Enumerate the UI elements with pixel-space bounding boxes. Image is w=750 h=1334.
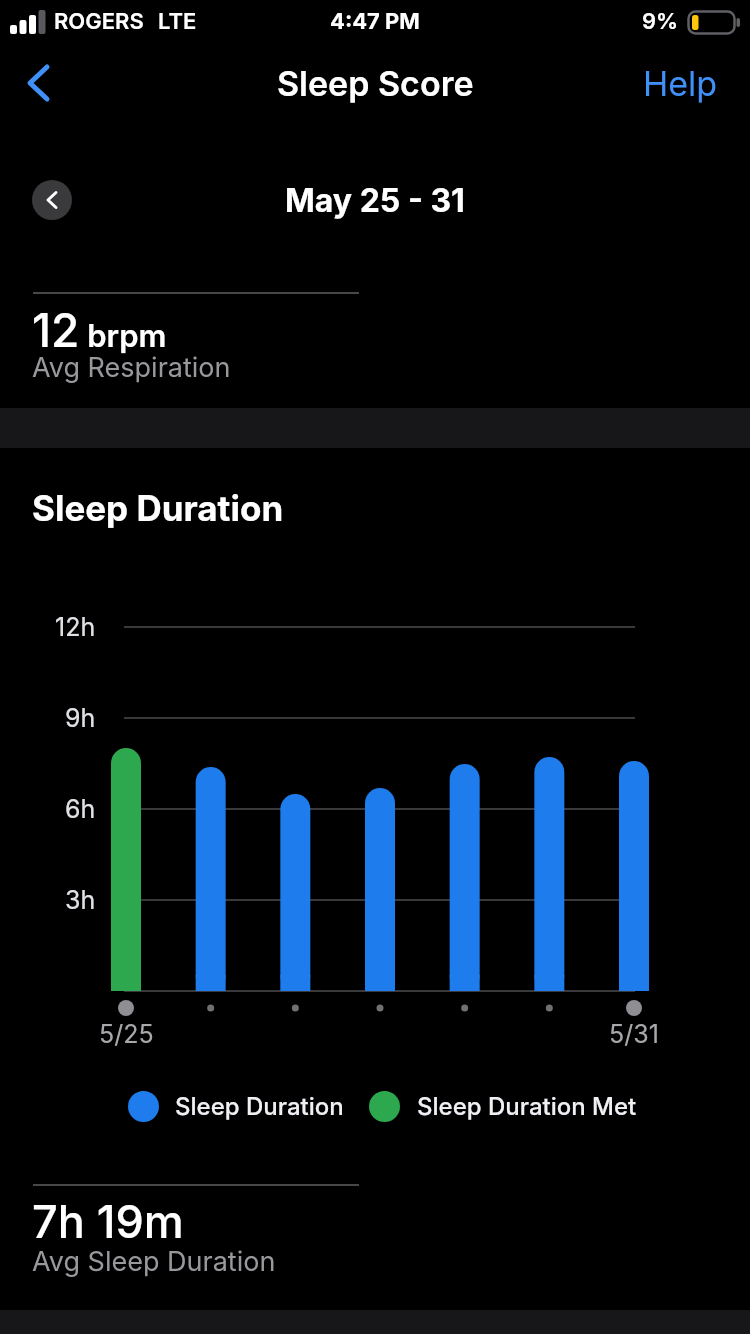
staticText: Help (643, 63, 718, 104)
staticText: Avg Sleep Duration (32, 1245, 276, 1278)
staticText: 7h 19m (32, 1194, 184, 1248)
button[interactable]: Sleep Duration (175, 1091, 344, 1122)
button[interactable]: Sleep Duration Met (417, 1091, 637, 1122)
staticText: 3h (65, 885, 96, 915)
button[interactable] (32, 180, 72, 220)
staticText: 12 brpm (32, 302, 167, 358)
staticText: Sleep Duration Met (417, 1092, 637, 1121)
button[interactable] (369, 1091, 400, 1122)
button[interactable] (128, 1091, 159, 1122)
staticText: 5/31 (609, 1019, 659, 1049)
staticText: Sleep Duration (175, 1092, 344, 1121)
button[interactable] (16, 53, 60, 113)
staticText: 9h (65, 703, 96, 733)
staticText: Sleep Score (277, 63, 474, 104)
staticText: ROGERS (54, 8, 144, 35)
staticText: May 25 - 31 (285, 181, 465, 220)
staticText: 5/25 (99, 1019, 154, 1049)
staticText: 12h (55, 612, 96, 642)
staticText: Sleep Duration (32, 487, 284, 529)
staticText: 4:47 PM (330, 8, 420, 35)
button[interactable]: Help (643, 63, 718, 104)
staticText: LTE (158, 8, 197, 35)
staticText: Avg Respiration (32, 351, 231, 384)
staticText: 6h (65, 794, 96, 824)
staticText: 9% (642, 8, 679, 35)
